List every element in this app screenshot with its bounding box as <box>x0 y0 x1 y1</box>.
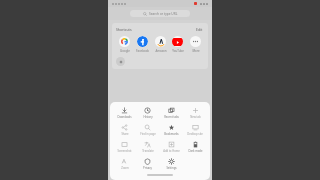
button[interactable]: YouTube <box>169 36 186 53</box>
staticText: Settings <box>166 166 177 170</box>
staticText: Search or type URL <box>149 12 178 16</box>
button[interactable]: History <box>136 106 159 120</box>
button[interactable]: Add to Home <box>159 140 183 154</box>
button[interactable]: Settings <box>159 157 183 171</box>
button[interactable]: Add shortcut <box>116 57 125 66</box>
button[interactable]: New tab <box>183 106 207 120</box>
button[interactable]: Zoom <box>113 157 136 171</box>
button[interactable]: Privacy <box>136 157 159 171</box>
staticText: Translate <box>142 149 154 153</box>
staticText: History <box>143 115 153 119</box>
staticText: More <box>192 49 200 53</box>
button[interactable]: More <box>187 36 204 53</box>
staticText: YouTube <box>172 49 184 53</box>
staticText: Find in page <box>140 132 156 136</box>
staticText: Add to Home <box>163 149 180 153</box>
staticText: Facebook <box>136 49 149 53</box>
staticText: Google <box>120 49 130 53</box>
staticText: New tab <box>190 115 201 119</box>
button[interactable]: Edit <box>195 26 204 33</box>
staticText: Screenshot <box>117 149 132 153</box>
staticText: Zoom <box>121 166 129 170</box>
staticText: Bookmarks <box>164 132 179 136</box>
button[interactable]: Bookmarks <box>159 123 183 137</box>
button[interactable]: Amazon <box>152 36 169 53</box>
button[interactable]: Facebook <box>134 36 151 53</box>
button[interactable]: Desktop site <box>183 123 207 137</box>
button[interactable]: Find in page <box>136 123 159 137</box>
button[interactable]: Share <box>113 123 136 137</box>
button[interactable]: Recent tabs <box>159 106 183 120</box>
button[interactable]: Screenshot <box>113 140 136 154</box>
staticText: Desktop site <box>187 132 203 136</box>
staticText: Recent tabs <box>164 115 179 119</box>
staticText: Edit <box>196 27 203 32</box>
staticText: Downloads <box>117 115 132 119</box>
staticText: Amazon <box>155 49 167 53</box>
button[interactable]: Search or type URL <box>130 10 190 17</box>
staticText: Share <box>121 132 129 136</box>
button[interactable]: Downloads <box>113 106 136 120</box>
button[interactable]: Dark mode <box>183 140 207 154</box>
button[interactable]: Translate <box>136 140 159 154</box>
staticText: Shortcuts <box>116 27 132 32</box>
staticText: Privacy <box>143 166 152 170</box>
staticText: Dark mode <box>188 149 203 153</box>
button[interactable]: Google <box>116 36 133 53</box>
